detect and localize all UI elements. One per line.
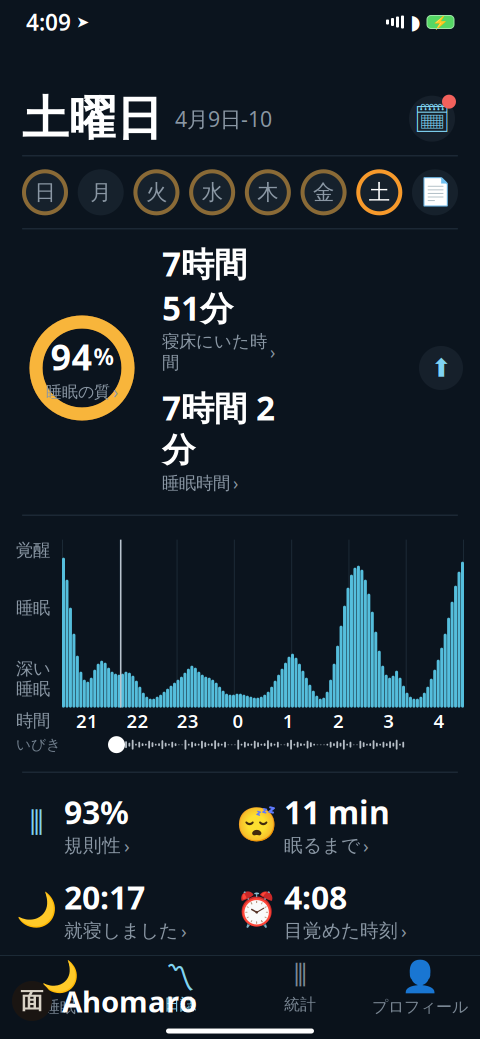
button[interactable]: メモ — [410, 167, 460, 217]
staticText: 20:17 — [64, 876, 145, 918]
staticText: 93% — [64, 791, 129, 833]
button[interactable]: 7時間 51分 — [162, 241, 277, 373]
staticText: 歩数 — [284, 1005, 322, 1028]
button[interactable]: 木 — [243, 167, 293, 217]
button[interactable]: ⦀ — [20, 791, 240, 858]
staticText: 7時間 51分 — [162, 241, 247, 330]
button[interactable]: 🌙 — [0, 951, 120, 1017]
staticText: 覚醒 — [16, 540, 50, 561]
staticText: › — [124, 833, 130, 858]
staticText: 9,216 — [284, 961, 365, 1004]
staticText: › — [270, 341, 275, 364]
button[interactable]: ⏰ — [240, 876, 460, 943]
staticText: 4 — [433, 708, 444, 733]
staticText: ⏰ — [236, 890, 278, 929]
staticText: 目覚めた時刻 — [284, 919, 398, 942]
staticText: プロフィール — [372, 997, 468, 1017]
staticText: 4:09 — [26, 7, 71, 37]
staticText: 📄 — [418, 177, 451, 208]
button[interactable]: ⦀ — [240, 954, 360, 1014]
staticText: 7時間 2分 — [162, 385, 275, 471]
staticText: 2 — [333, 708, 344, 733]
staticText: 睡眠の質 — [46, 382, 110, 402]
staticText: 金 — [313, 179, 334, 205]
staticText: › — [113, 380, 118, 403]
staticText: 統計 — [284, 995, 316, 1014]
staticText: 土曜日 — [22, 90, 163, 147]
staticText: 就寝しました — [64, 919, 178, 942]
button[interactable]: 月 — [76, 167, 126, 217]
staticText: 睡眠 — [44, 997, 76, 1017]
staticText: › — [233, 472, 238, 495]
staticText: 1 — [283, 708, 294, 733]
staticText: › — [363, 833, 369, 858]
staticText: ◗ — [410, 11, 421, 33]
staticText: ⦀ — [293, 962, 306, 992]
staticText: 睡眠 — [16, 597, 50, 618]
staticText: 規則性 — [64, 834, 121, 857]
staticText: ⦀ — [29, 808, 44, 840]
staticText: 0 — [232, 708, 243, 733]
button[interactable]: 共有 — [416, 343, 466, 393]
button[interactable]: 94 — [26, 312, 138, 424]
staticText: 3h 52m — [64, 961, 178, 1004]
staticText: 🗓 — [413, 102, 450, 135]
button[interactable]: 火 — [131, 167, 181, 217]
staticText: 土 — [369, 179, 390, 205]
staticText: 木 — [257, 179, 278, 205]
button[interactable]: 👤 — [360, 951, 480, 1017]
button[interactable]: 土 — [354, 167, 404, 217]
staticText: 23 — [177, 708, 199, 733]
staticText: › — [401, 918, 407, 943]
staticText: ⚡ — [432, 14, 449, 30]
staticText: 面 — [20, 987, 43, 1015]
button[interactable]: 💤 — [20, 961, 240, 1028]
staticText: 深い — [16, 658, 51, 679]
button[interactable]: 🌙 — [20, 876, 240, 943]
staticText: 🌙 — [41, 959, 79, 994]
staticText: 3 — [383, 708, 394, 733]
button[interactable]: 〽 — [120, 954, 240, 1014]
staticText: 💤 — [16, 976, 58, 1014]
staticText: 👤 — [401, 959, 439, 994]
staticText: 日誌 — [164, 995, 196, 1014]
staticText: 火 — [146, 179, 167, 205]
staticText: 時間 — [16, 710, 50, 731]
button[interactable]: 金 — [299, 167, 349, 217]
staticText: 睡眠 — [16, 678, 50, 700]
staticText: › — [124, 1004, 130, 1028]
button[interactable]: 日 — [20, 167, 70, 217]
staticText: 21 — [76, 708, 98, 733]
staticText: 😴 — [236, 805, 278, 843]
staticText: いびき — [16, 736, 61, 754]
staticText: 眠るまで — [284, 834, 360, 857]
staticText: 日 — [34, 179, 55, 205]
staticText: 水 — [202, 179, 223, 205]
staticText: 寝床にいた時間 — [162, 331, 267, 373]
staticText: 睡眠時間 — [162, 472, 230, 494]
staticText: 94 — [50, 333, 92, 380]
staticText: 4月9日-10 — [175, 104, 272, 133]
staticText: 🌙 — [16, 890, 58, 929]
button[interactable]: カレンダー — [406, 93, 458, 145]
button[interactable]: 😴 — [240, 791, 460, 858]
staticText: ➤ — [76, 13, 89, 31]
staticText: 〽 — [164, 962, 195, 992]
staticText: 22 — [126, 708, 148, 733]
staticText: › — [181, 918, 187, 943]
staticText: 4:08 — [284, 876, 347, 918]
staticText: Ahomaro — [62, 981, 197, 1020]
staticText: % — [93, 341, 113, 371]
staticText: 11 min — [284, 791, 390, 833]
staticText: 月 — [90, 179, 111, 205]
button[interactable]: 7時間 2分 — [162, 385, 277, 495]
staticText: ⬆ — [430, 354, 451, 382]
staticText: いびき — [64, 1005, 121, 1028]
button[interactable]: 👟 — [240, 961, 460, 1028]
button[interactable]: 水 — [187, 167, 237, 217]
